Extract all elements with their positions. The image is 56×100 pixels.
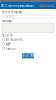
button[interactable]: Parents xyxy=(2,47,54,50)
button[interactable]: Menu xyxy=(1,2,4,9)
staticText: Communication xyxy=(5,3,33,8)
staticText: Parents xyxy=(6,47,16,50)
staticText: Select Template xyxy=(2,10,23,14)
staticText: Send To xyxy=(2,34,13,37)
button[interactable]: Send SMS xyxy=(22,53,34,58)
staticText: Message xyxy=(2,19,13,22)
staticText: -- Select -- xyxy=(3,15,17,18)
staticText: All Students xyxy=(6,38,23,42)
staticText: Staff xyxy=(6,42,11,46)
staticText: Send SMS xyxy=(22,54,34,58)
button[interactable]: Staff xyxy=(2,42,54,46)
button[interactable]: All Students xyxy=(2,38,54,41)
staticText: alphoras xyxy=(39,3,54,8)
